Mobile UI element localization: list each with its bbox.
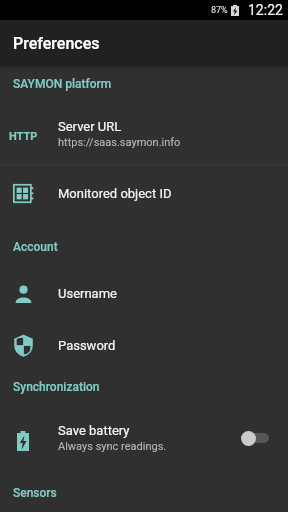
staticText: Save battery (58, 423, 130, 438)
staticText: Password (58, 338, 116, 353)
staticText: SAYMON platform (13, 77, 112, 91)
button[interactable]: Save battery (0, 414, 288, 462)
staticText: Always sync readings. (58, 440, 167, 453)
button[interactable]: Monitored object ID (0, 169, 288, 217)
staticText: https://saas.saymon.info (58, 136, 181, 149)
staticText: Sensors (13, 486, 57, 500)
button[interactable]: Save battery toggle (241, 430, 275, 446)
button[interactable]: HTTP (0, 108, 288, 160)
staticText: Server URL (58, 119, 122, 134)
staticText: HTTP (9, 130, 38, 143)
button[interactable]: Password (0, 321, 288, 369)
staticText: 12:22 (248, 2, 283, 18)
staticText: Synchronization (13, 380, 100, 394)
staticText: Username (58, 286, 117, 301)
staticText: Monitored object ID (58, 186, 172, 201)
staticText: Account (13, 240, 58, 254)
staticText: Preferences (13, 34, 100, 53)
staticText: 87% (211, 5, 228, 16)
button[interactable]: Username (0, 269, 288, 317)
